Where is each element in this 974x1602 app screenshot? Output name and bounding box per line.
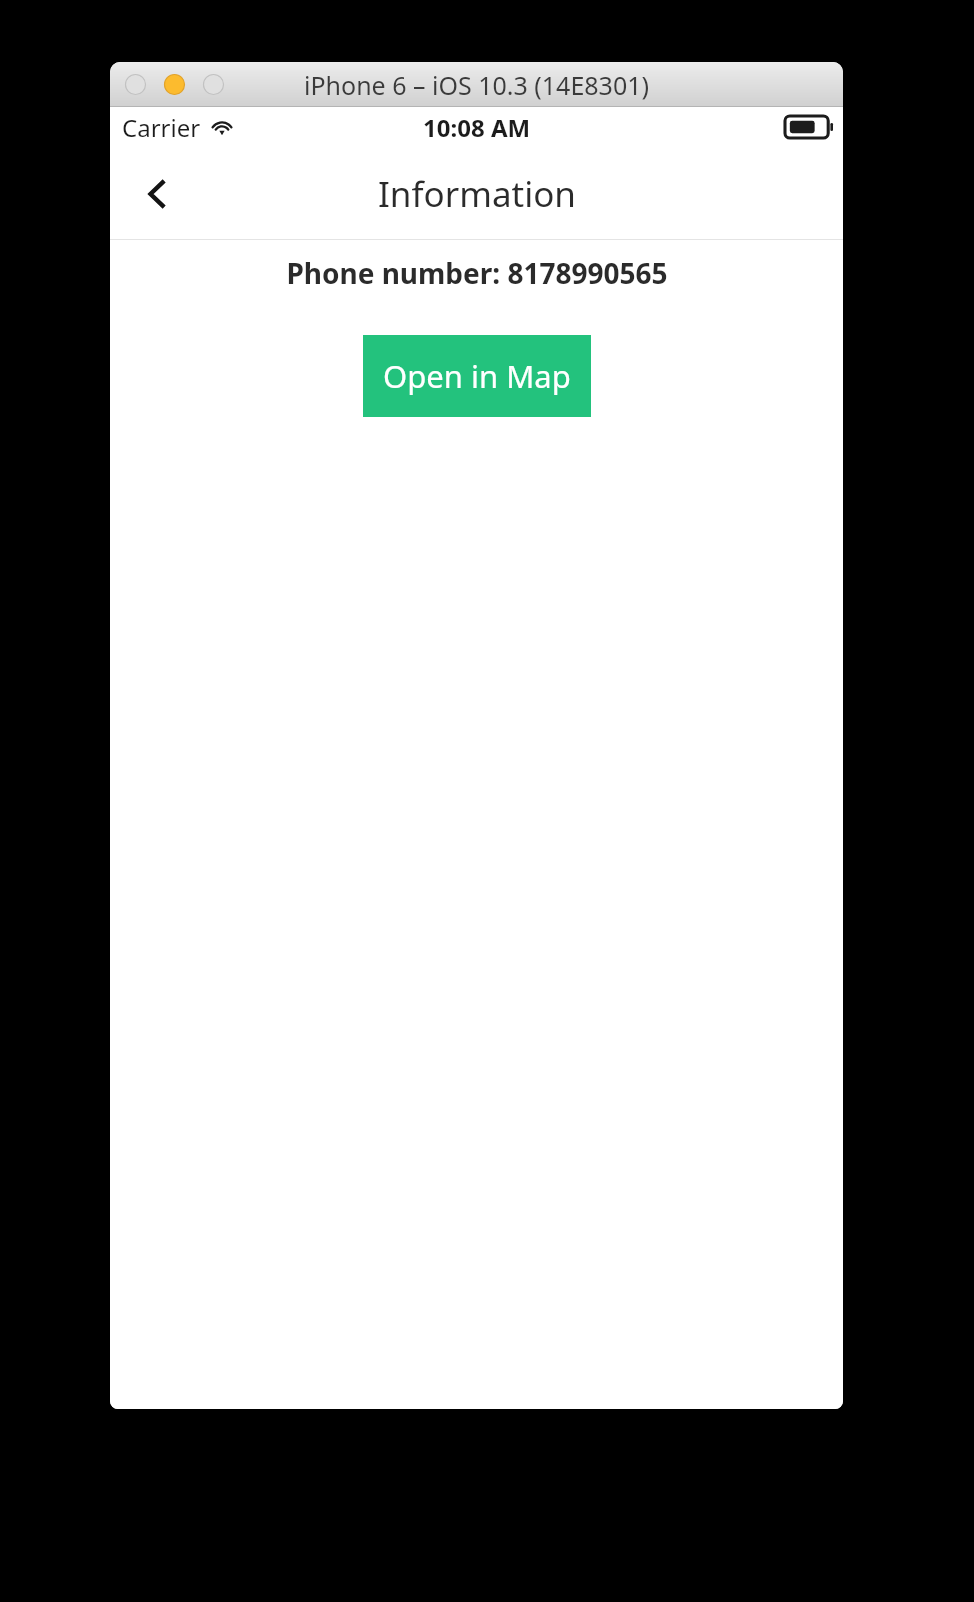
button[interactable]: Minimize (164, 74, 185, 95)
button[interactable]: Zoom (203, 74, 224, 95)
staticText: Open in Map (383, 355, 571, 397)
staticText: Carrier (122, 111, 201, 144)
staticText: Phone number: 8178990565 (286, 254, 668, 292)
button[interactable]: Back (136, 172, 180, 216)
staticText: 10:08 AM (423, 111, 531, 144)
staticText: iPhone 6 – iOS 10.3 (14E8301) (304, 68, 650, 102)
button[interactable]: Close (125, 74, 146, 95)
button[interactable]: Open in Map (363, 335, 591, 417)
staticText: Information (378, 170, 576, 218)
